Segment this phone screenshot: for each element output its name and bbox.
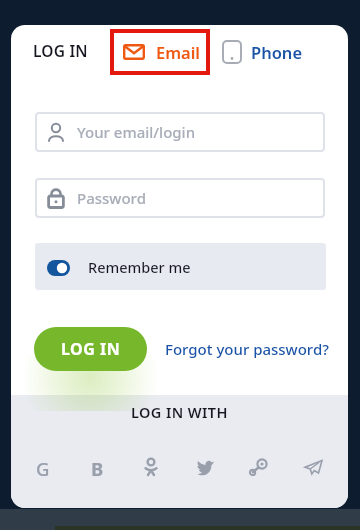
button[interactable]: Phone xyxy=(216,28,321,75)
button[interactable]: Remember me xyxy=(35,243,326,290)
staticText: Password xyxy=(77,188,146,208)
staticText: Remember me xyxy=(88,257,191,277)
staticText: Your email/login xyxy=(77,122,196,142)
staticText: LOG IN WITH xyxy=(131,402,228,422)
button[interactable]: G xyxy=(32,456,54,478)
button[interactable] xyxy=(194,456,216,478)
staticText: LOG IN xyxy=(33,40,88,61)
button[interactable]: Forgot your password? xyxy=(159,337,334,361)
button[interactable] xyxy=(248,456,270,478)
button[interactable]: Your email/login xyxy=(35,112,325,152)
button[interactable] xyxy=(141,456,161,478)
staticText: G xyxy=(36,456,50,478)
button[interactable]: LOG IN xyxy=(34,327,147,371)
staticText: LOG IN xyxy=(61,338,121,360)
staticText: Phone xyxy=(251,41,303,62)
staticText: Forgot your password? xyxy=(165,339,329,359)
staticText: Email xyxy=(156,41,201,62)
button[interactable] xyxy=(302,456,324,478)
button[interactable]: Email xyxy=(110,29,210,75)
staticText: B xyxy=(91,456,104,478)
button[interactable]: Password xyxy=(35,178,325,218)
button[interactable]: B xyxy=(86,456,108,478)
